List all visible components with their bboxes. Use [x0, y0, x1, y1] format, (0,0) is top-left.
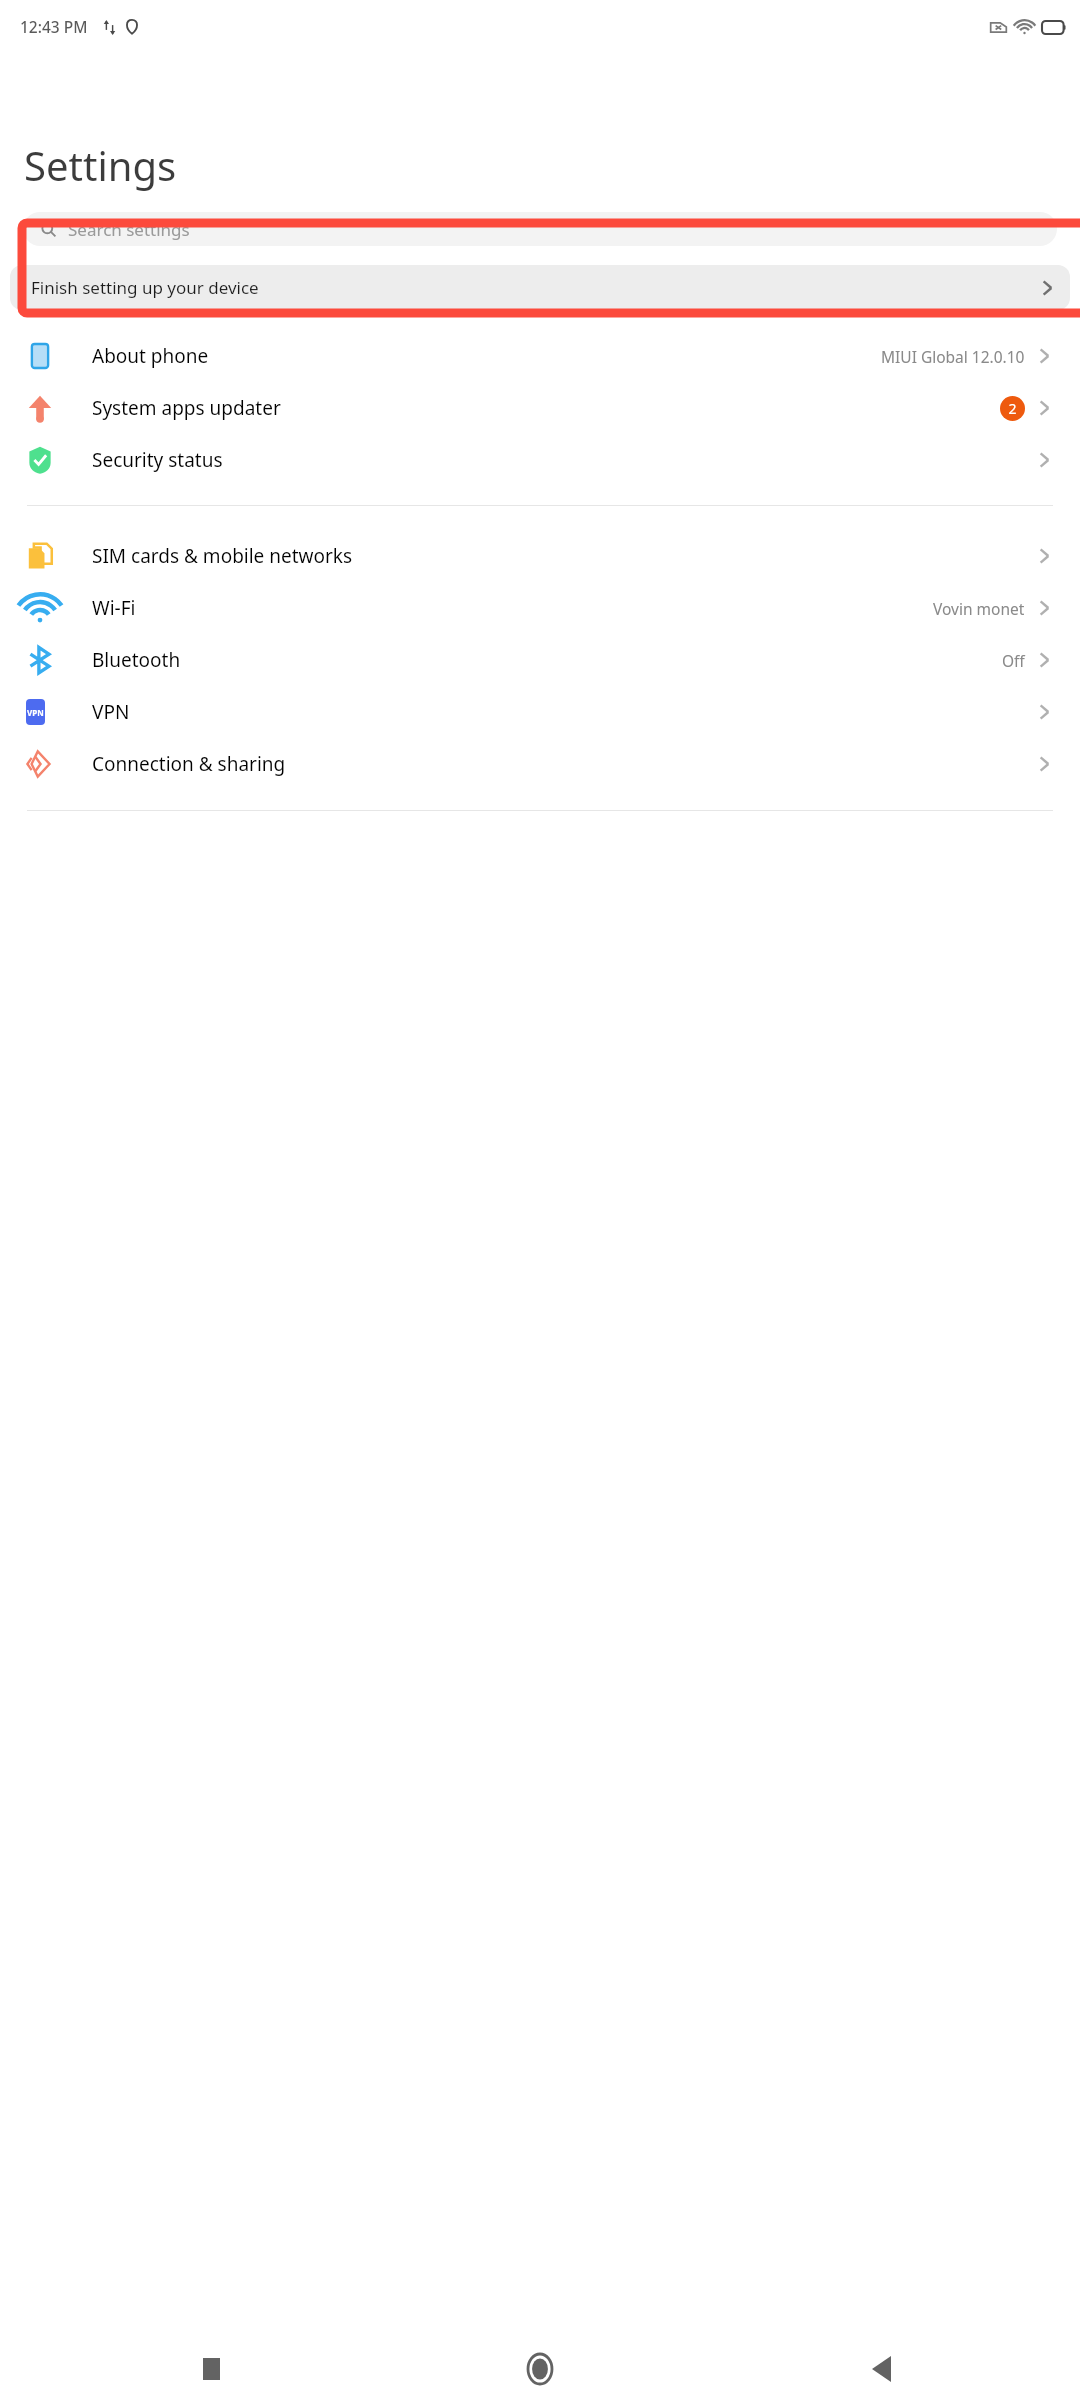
button[interactable]: Home [517, 2346, 563, 2392]
staticText: 12:43 PM [20, 16, 88, 37]
button[interactable]: Search settings [23, 212, 1057, 246]
staticText: Security status [92, 447, 223, 473]
staticText: Vovin monet [933, 598, 1025, 619]
staticText: Search settings [68, 218, 190, 241]
staticText: VPN [92, 699, 130, 725]
button[interactable]: Finish setting up your device [10, 265, 1070, 310]
staticText: 2 [1008, 399, 1017, 418]
button[interactable]: Recent apps [188, 2346, 234, 2392]
staticText: MIUI Global 12.0.10 [881, 346, 1025, 367]
staticText: About phone [92, 343, 209, 369]
button[interactable]: SIM cards & mobile networks [0, 530, 1080, 582]
staticText: Bluetooth [92, 647, 181, 673]
button[interactable]: Bluetooth [0, 634, 1080, 686]
staticText: VPN [27, 707, 44, 718]
button[interactable]: System apps updater [0, 382, 1080, 434]
staticText: Wi-Fi [92, 595, 136, 621]
button[interactable]: Security status [0, 434, 1080, 486]
button[interactable]: Back [858, 2346, 904, 2392]
staticText: SIM cards & mobile networks [92, 543, 353, 569]
button[interactable]: About phone [0, 330, 1080, 382]
button[interactable]: Connection & sharing [0, 738, 1080, 790]
staticText: Finish setting up your device [31, 276, 259, 299]
staticText: Settings [24, 138, 177, 192]
button[interactable]: Wi-Fi [0, 582, 1080, 634]
staticText: System apps updater [92, 395, 281, 421]
staticText: Off [1002, 650, 1025, 671]
button[interactable]: VPN [0, 686, 1080, 738]
staticText: Connection & sharing [92, 751, 286, 777]
